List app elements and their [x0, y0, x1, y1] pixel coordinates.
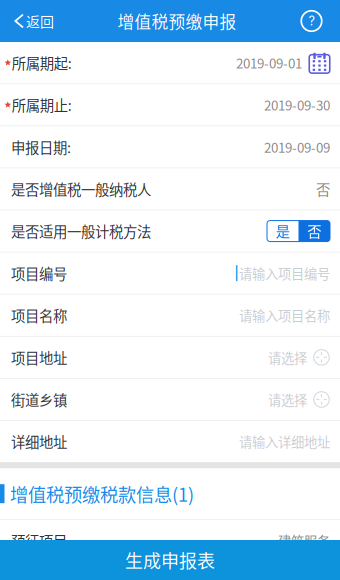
button[interactable]: 否 — [298, 220, 330, 241]
staticText: 请选择 — [268, 390, 307, 409]
staticText: 详细地址 — [11, 431, 67, 452]
staticText: 增值税预缴申报 — [117, 9, 236, 33]
staticText: 是否增值税一般纳税人 — [11, 178, 151, 199]
staticText: 返回 — [26, 11, 54, 31]
staticText: 所属期起: — [12, 52, 72, 73]
staticText: 是否适用一般计税方法 — [11, 221, 151, 241]
staticText: 预征项目 — [11, 530, 67, 551]
staticText: 2019-09-30 — [264, 95, 330, 114]
staticText: 请输入项目编号 — [239, 263, 330, 283]
button[interactable]: 是 — [267, 220, 298, 241]
staticText: 是 — [276, 221, 290, 241]
button[interactable]: 返回 — [0, 0, 64, 42]
staticText: 请输入项目名称 — [239, 306, 330, 325]
staticText: 所属期止: — [12, 94, 72, 115]
staticText: 否 — [307, 221, 321, 241]
staticText: 请选择 — [268, 348, 307, 367]
staticText: 项目名称 — [11, 305, 67, 326]
button[interactable]: 街道乡镇 — [0, 379, 340, 420]
staticText: 街道乡镇 — [11, 389, 67, 410]
button[interactable]: 生成申报表 — [0, 540, 340, 580]
staticText: 项目编号 — [11, 263, 67, 284]
button[interactable]: 项目地址 — [0, 337, 340, 378]
staticText: 否 — [316, 178, 330, 199]
staticText: 生成申报表 — [125, 547, 215, 573]
staticText: 增值税预缴税款信息(1) — [10, 480, 194, 507]
staticText: 申报日期: — [11, 136, 71, 157]
staticText: 项目地址 — [11, 347, 67, 368]
staticText: 2019-09-01 — [236, 53, 302, 72]
staticText: ? — [308, 13, 314, 29]
button[interactable]: 所属期止: — [0, 84, 340, 125]
staticText: 请输入详细地址 — [239, 432, 330, 451]
staticText: 2019-09-09 — [264, 137, 330, 156]
staticText: 建筑服务 — [278, 531, 330, 550]
button[interactable]: Help — [293, 0, 340, 42]
button[interactable]: 所属期起: — [0, 42, 340, 83]
